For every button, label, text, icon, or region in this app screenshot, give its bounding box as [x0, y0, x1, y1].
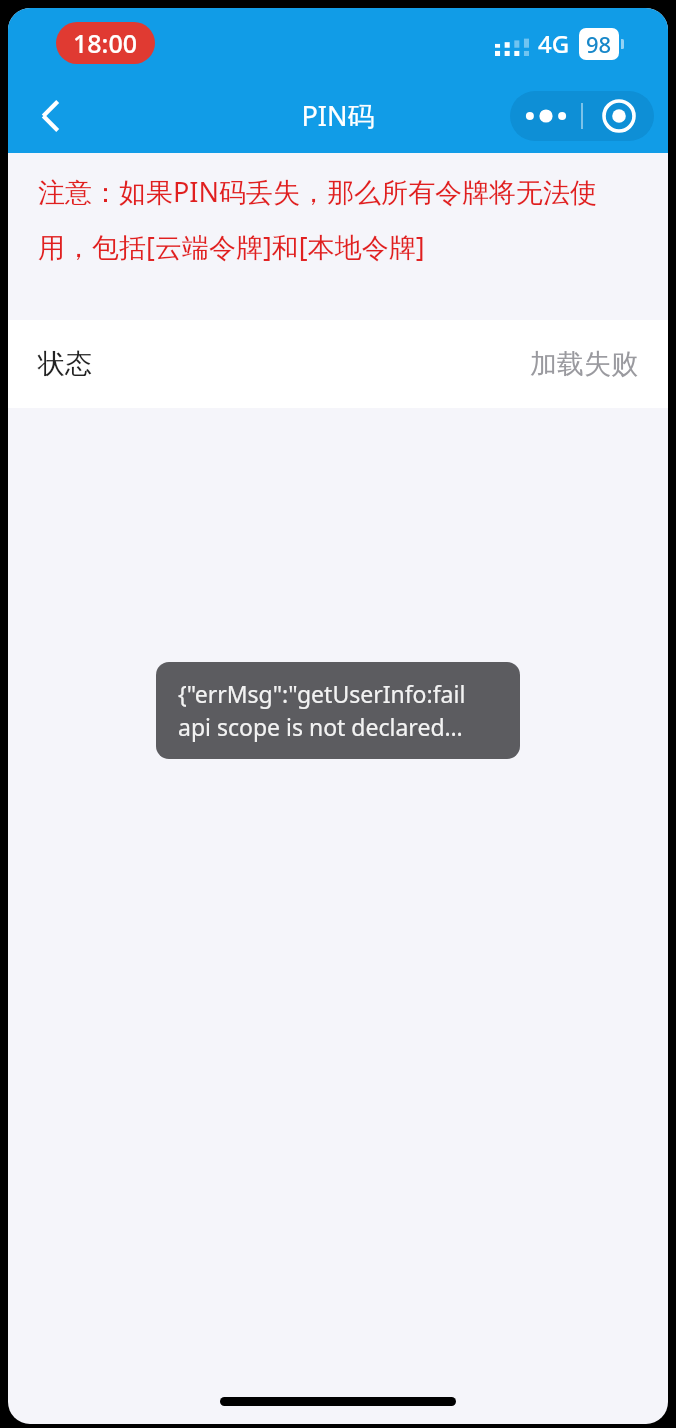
button[interactable]: 状态	[8, 320, 668, 408]
button[interactable]: More	[510, 91, 581, 141]
staticText: 加载失败	[530, 347, 638, 381]
staticText: 状态	[38, 347, 92, 381]
button[interactable]: Close	[583, 91, 654, 141]
staticText: 4G	[538, 27, 570, 60]
staticText: PIN码	[301, 97, 375, 134]
staticText: {"errMsg":"getUserInfo:fail api scope is…	[178, 678, 498, 743]
staticText: 98	[586, 29, 612, 59]
button[interactable]: Back	[8, 78, 94, 153]
staticText: 注意：如果PIN码丢失，那么所有令牌将无法使用，包括[云端令牌]和[本地令牌]	[38, 173, 640, 265]
staticText: 18:00	[73, 26, 138, 60]
